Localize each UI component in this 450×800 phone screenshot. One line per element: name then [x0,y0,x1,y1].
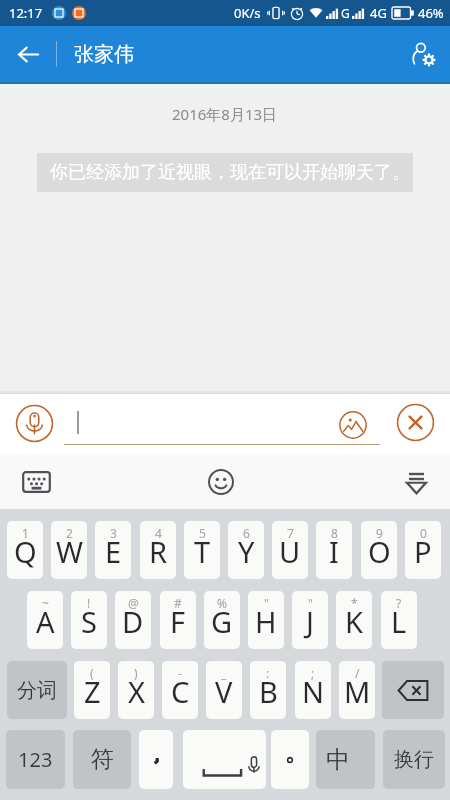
button[interactable]: 4 [140,521,176,579]
button[interactable]: 123 [6,730,65,789]
button[interactable]: 分词 [7,661,67,719]
button[interactable]: ! [71,591,107,649]
staticText: _ [221,665,227,681]
staticText: S [81,602,97,641]
staticText: 3 [110,525,117,541]
staticText: # [174,595,182,611]
staticText: 你已经添加了近视眼，现在可以开始聊天了。 [50,161,410,184]
button[interactable]: 符 [73,730,131,789]
button[interactable]: 7 [272,521,308,579]
staticText: G [341,5,350,21]
button[interactable]: " [292,591,328,649]
staticText: 0K/s [234,4,261,22]
button[interactable]: 5 [184,521,220,579]
button[interactable]: : [250,661,286,719]
staticText: G [211,602,233,641]
button[interactable]: Keyboard [6,454,66,509]
staticText: V [215,672,233,711]
button[interactable]: 8 [316,521,352,579]
staticText: Z [84,672,101,711]
staticText: W [56,532,83,571]
staticText: @ [128,595,139,611]
button[interactable]: Send image [333,405,372,444]
staticText: ( [90,665,94,681]
button[interactable]: Period [271,730,309,789]
button[interactable]: Backspace [382,661,444,719]
button[interactable]: Space [183,730,266,789]
staticText: 123 [18,746,53,773]
staticText: ; [311,665,315,681]
staticText: J [306,602,314,641]
button[interactable]: ) [118,661,154,719]
staticText: H [255,602,277,641]
staticText: 4 [155,525,162,541]
button[interactable]: # [160,591,196,649]
staticText: O [368,532,391,571]
staticText: B [259,672,278,711]
button[interactable]: @ [115,591,151,649]
staticText: " [308,595,313,611]
staticText: * [351,595,358,611]
staticText: ! [87,595,91,611]
button[interactable]: ? [381,591,417,649]
staticText: 张家伟 [74,42,134,67]
staticText: X [128,672,145,711]
button[interactable]: Voice input [12,401,56,445]
staticText: 46% [418,4,444,22]
staticText: / [355,665,360,681]
staticText: U [279,532,301,571]
staticText: R [149,532,168,571]
button[interactable]: - [162,661,198,719]
staticText: I [329,532,339,571]
staticText: 0 [420,525,427,541]
staticText: % [217,595,227,611]
staticText: 9 [376,525,383,541]
button[interactable]: Contact settings [394,26,450,82]
staticText: C [171,672,190,711]
staticText: 7 [287,525,294,541]
staticText: 1 [22,525,29,541]
staticText: 12:17 [9,4,43,22]
button[interactable]: 换行 [383,730,445,789]
button[interactable]: ; [295,661,331,719]
button[interactable]: * [336,591,372,649]
button[interactable]: 你已经添加了近视眼，现在可以开始聊天了。 [37,153,413,192]
button[interactable]: 3 [95,521,131,579]
button[interactable]: 6 [228,521,264,579]
button[interactable]: _ [206,661,242,719]
button[interactable]: Comma [139,730,173,789]
button[interactable]: 0 [405,521,441,579]
staticText: 8 [331,525,338,541]
staticText: 2016年8月13日 [172,104,278,124]
button[interactable]: Back [0,26,56,82]
staticText: F [170,602,186,641]
button[interactable]: 9 [361,521,397,579]
staticText: Y [238,532,255,571]
button[interactable]: 2 [51,521,87,579]
staticText: ~ [42,595,49,611]
staticText: Q [14,532,37,571]
button[interactable]: ( [74,661,110,719]
staticText: P [414,532,432,571]
button[interactable]: % [204,591,240,649]
staticText: M [344,672,371,711]
button[interactable]: 中 [316,730,375,789]
button[interactable]: " [248,591,284,649]
staticText: 6 [243,525,250,541]
button[interactable]: Hide keyboard [388,454,444,509]
staticText: K [345,602,363,641]
staticText: E [105,532,122,571]
button[interactable]: Emoji [196,457,246,507]
button[interactable]: More [394,401,436,443]
button[interactable]: 1 [7,521,43,579]
staticText: 符 [91,745,114,774]
staticText: : [266,665,270,681]
staticText: D [122,602,144,641]
button[interactable]: / [339,661,375,719]
staticText: " [264,595,269,611]
button[interactable]: ~ [27,591,63,649]
staticText: 2 [66,525,73,541]
staticText: L [391,602,407,641]
staticText: 4G [370,4,387,22]
staticText: 中 [326,745,350,775]
